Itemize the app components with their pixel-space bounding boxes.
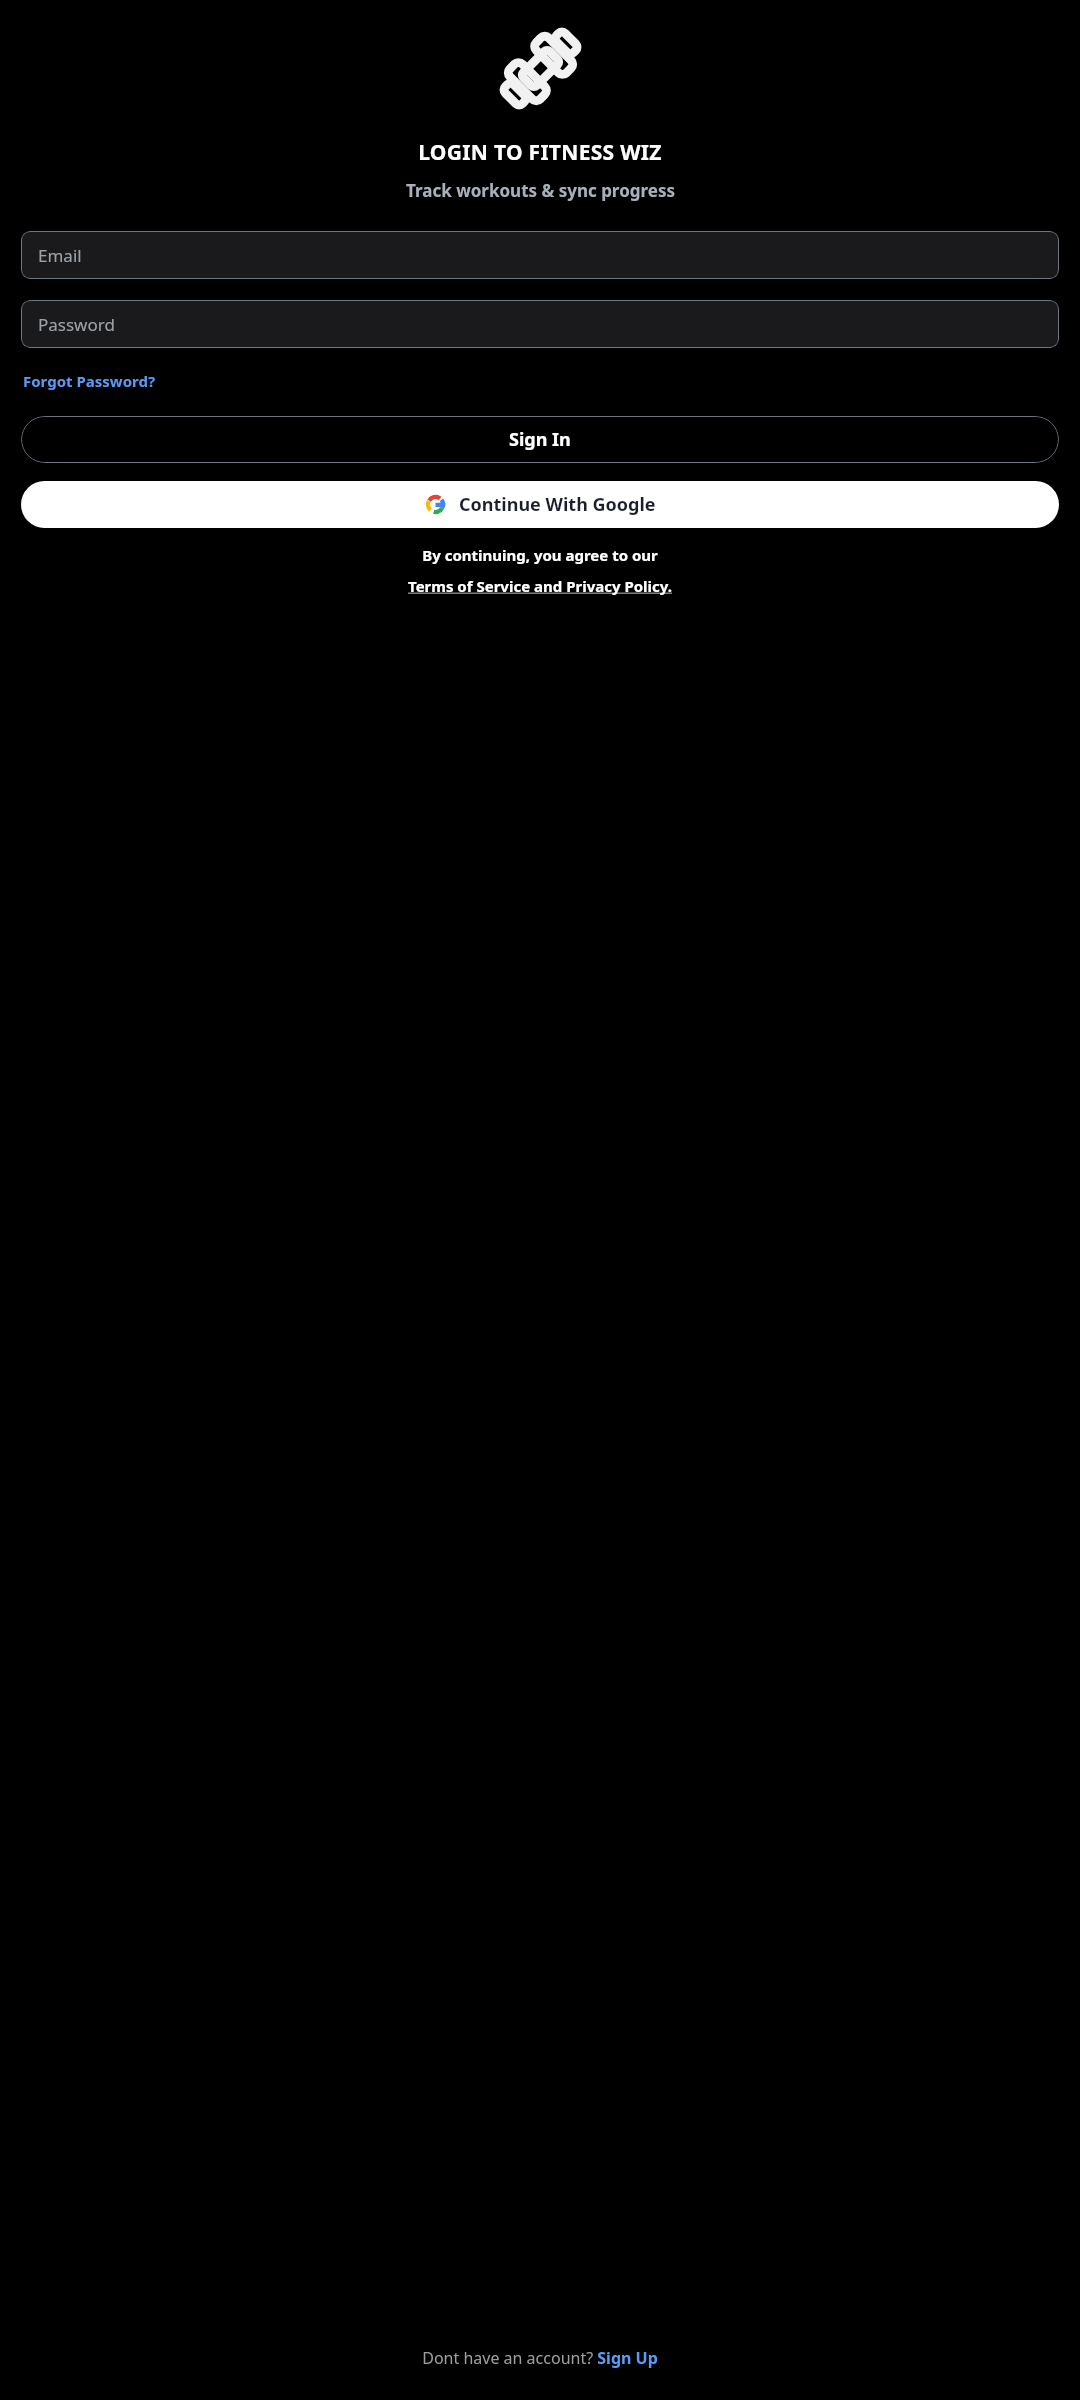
staticText: Email [38, 244, 82, 267]
button[interactable]: Continue With Google [21, 481, 1059, 528]
staticText: Continue With Google [459, 492, 656, 517]
staticText: Dont have an account? Sign Up [422, 2347, 658, 2369]
button[interactable]: Dont have an account? Sign Up [416, 2343, 664, 2373]
staticText: Terms of Service and Privacy Policy. [408, 576, 672, 596]
staticText: Track workouts & sync progress [406, 179, 675, 202]
button[interactable]: Password [21, 300, 1059, 348]
button[interactable]: Email [21, 231, 1059, 279]
button[interactable]: Sign In [21, 416, 1059, 463]
button[interactable]: Terms of Service and Privacy Policy. [405, 574, 675, 598]
staticText: Password [38, 313, 115, 336]
staticText: LOGIN TO FITNESS WIZ [418, 138, 662, 167]
staticText: Sign In [509, 427, 571, 452]
other: Fitness Wiz logo [494, 22, 587, 115]
staticText: Forgot Password? [23, 371, 156, 391]
staticText: By continuing, you agree to our [422, 545, 658, 565]
button[interactable]: Forgot Password? [21, 368, 158, 394]
